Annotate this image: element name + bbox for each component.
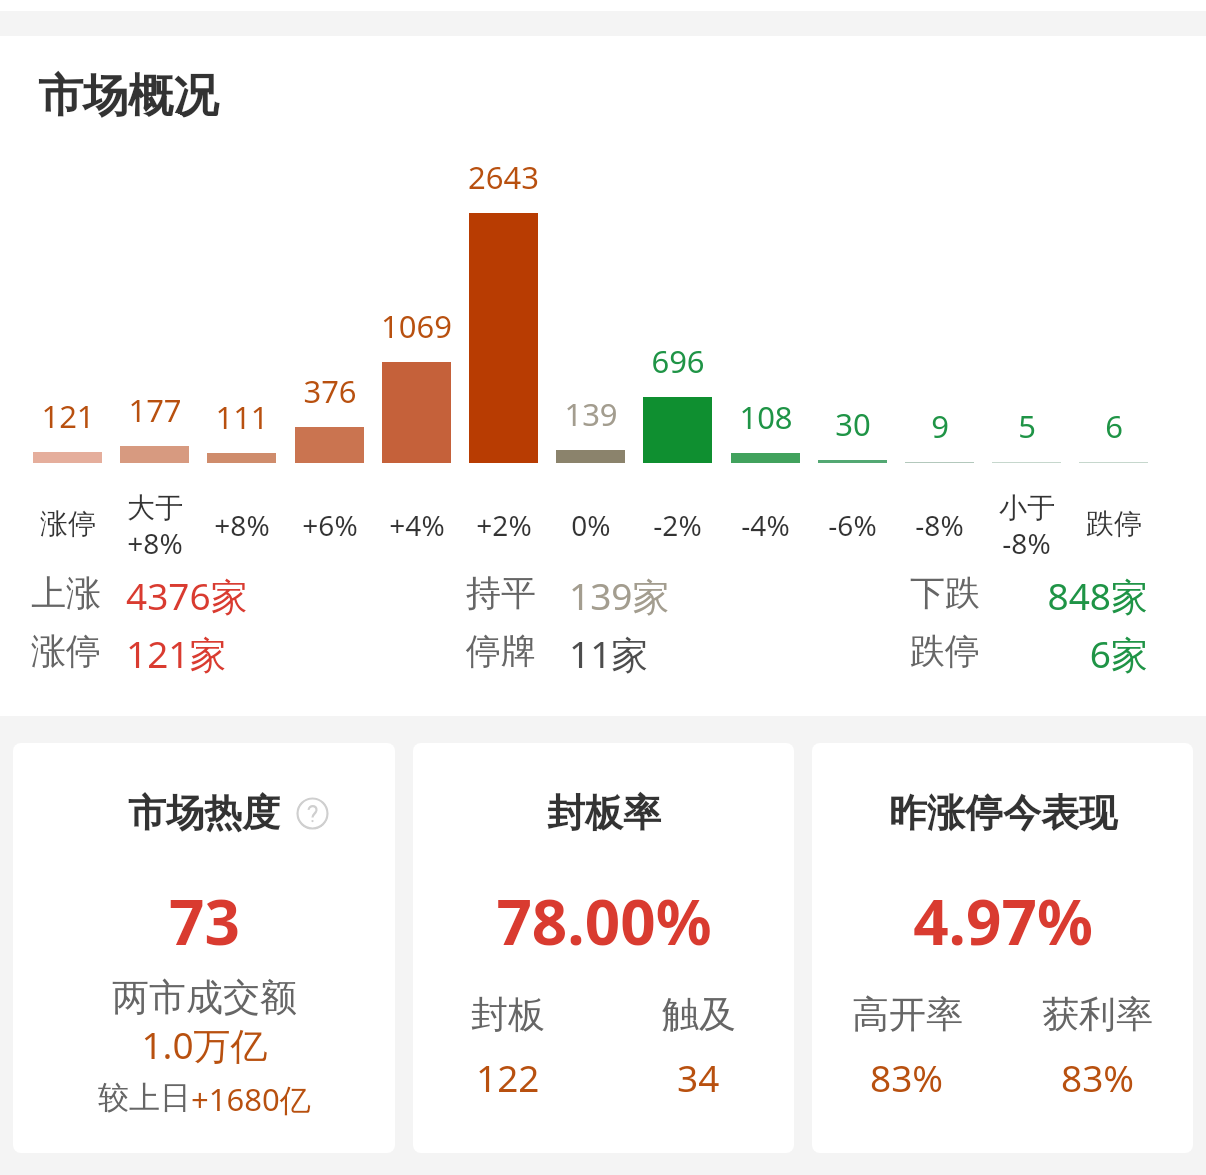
staticText: 跌停 xyxy=(1086,506,1142,541)
staticText: 较上日 xyxy=(98,1078,191,1117)
button[interactable]: -6% 30家 xyxy=(809,150,896,558)
staticText: 696 xyxy=(651,340,705,382)
staticText: -6% xyxy=(828,506,877,544)
button[interactable]: +4% 1069家 xyxy=(373,150,460,558)
button[interactable]: 大于+8% 177家 xyxy=(111,150,198,558)
staticText: 涨停 xyxy=(31,629,101,673)
staticText: -2% xyxy=(653,506,702,544)
staticText: 上涨 xyxy=(31,571,101,615)
staticText: 触及 xyxy=(662,991,736,1038)
staticText: 小于 xyxy=(999,490,1055,525)
staticText: 83% xyxy=(1061,1052,1135,1102)
staticText: 2643 xyxy=(468,156,539,198)
button[interactable]: 跌停 6家 xyxy=(1070,150,1157,558)
staticText: 涨停 xyxy=(40,506,96,541)
staticText: 30 xyxy=(835,403,871,445)
staticText: +2% xyxy=(476,506,532,544)
staticText: 111 xyxy=(215,396,269,438)
staticText: 昨涨停今表现 xyxy=(889,789,1117,837)
staticText: 108 xyxy=(739,396,793,438)
staticText: 大于 xyxy=(127,490,183,525)
staticText: 6家 xyxy=(1089,628,1148,679)
staticText: 376 xyxy=(303,370,357,412)
staticText: 11家 xyxy=(569,628,649,679)
staticText: 市场概况 xyxy=(38,68,218,125)
staticText: 177 xyxy=(128,389,182,431)
staticText: -4% xyxy=(741,506,790,544)
staticText: 122 xyxy=(476,1052,540,1102)
staticText: 6 xyxy=(1105,405,1123,447)
button[interactable]: -8% 9家 xyxy=(896,150,983,558)
staticText: 848家 xyxy=(1047,570,1148,621)
staticText: 83% xyxy=(870,1052,944,1102)
staticText: +8% xyxy=(127,524,183,562)
staticText: 下跌 xyxy=(910,571,980,615)
staticText: 1.0万亿 xyxy=(141,1019,268,1070)
staticText: +6% xyxy=(302,506,358,544)
staticText: +1680亿 xyxy=(191,1078,311,1120)
button[interactable]: +8% 111家 xyxy=(198,150,285,558)
staticText: 封板率 xyxy=(547,789,661,837)
button[interactable]: 市场热度 xyxy=(13,743,395,1153)
staticText: 0% xyxy=(571,506,611,544)
button[interactable]: 涨停 121家 xyxy=(24,150,111,558)
button[interactable]: +6% 376家 xyxy=(286,150,373,558)
staticText: 4.97% xyxy=(913,879,1093,963)
staticText: 121 xyxy=(41,395,95,437)
staticText: 获利率 xyxy=(1042,991,1153,1038)
staticText: 封板 xyxy=(471,991,545,1038)
staticText: 跌停 xyxy=(910,629,980,673)
staticText: +4% xyxy=(389,506,445,544)
button[interactable]: 0% 139家 xyxy=(547,150,634,558)
staticText: 5 xyxy=(1018,405,1036,447)
button[interactable]: -4% 108家 xyxy=(722,150,809,558)
button[interactable]: 封板率 xyxy=(413,743,794,1153)
staticText: -8% xyxy=(1002,524,1051,562)
staticText: 139家 xyxy=(569,570,670,621)
staticText: 139 xyxy=(564,393,618,435)
button[interactable]: Help, what is market heat xyxy=(296,797,329,830)
staticText: +8% xyxy=(214,506,270,544)
staticText: 两市成交额 xyxy=(112,974,297,1021)
staticText: -8% xyxy=(915,506,964,544)
staticText: 1069 xyxy=(381,305,452,347)
staticText: 121家 xyxy=(126,628,227,679)
staticText: 9 xyxy=(931,405,949,447)
staticText: 高开率 xyxy=(852,991,963,1038)
staticText: 78.00% xyxy=(496,879,712,963)
staticText: 73 xyxy=(169,879,240,963)
button[interactable]: +2% 2643家 xyxy=(460,150,547,558)
button[interactable]: 昨涨停今表现 xyxy=(812,743,1193,1153)
staticText: 市场热度 xyxy=(128,789,280,837)
staticText: 持平 xyxy=(466,571,536,615)
staticText: 34 xyxy=(677,1052,720,1102)
staticText: 4376家 xyxy=(126,570,248,621)
button[interactable]: 小于-8% 5家 xyxy=(983,150,1070,558)
staticText: 停牌 xyxy=(466,629,536,673)
button[interactable]: -2% 696家 xyxy=(634,150,721,558)
